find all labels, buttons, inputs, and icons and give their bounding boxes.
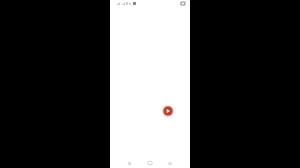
button[interactable]: Overview [124, 158, 134, 168]
button[interactable]: Back [165, 158, 175, 168]
button[interactable]: Home [145, 158, 155, 168]
button[interactable]: Play [159, 102, 177, 120]
